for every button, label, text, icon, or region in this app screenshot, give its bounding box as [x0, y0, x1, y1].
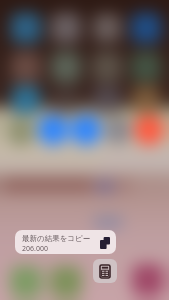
- button[interactable]: 最新の結果をコピー: [15, 230, 116, 254]
- staticText: 最新の結果をコピー: [22, 234, 91, 243]
- staticText: 206.000: [22, 244, 48, 254]
- button[interactable]: Calculator: [93, 259, 117, 283]
